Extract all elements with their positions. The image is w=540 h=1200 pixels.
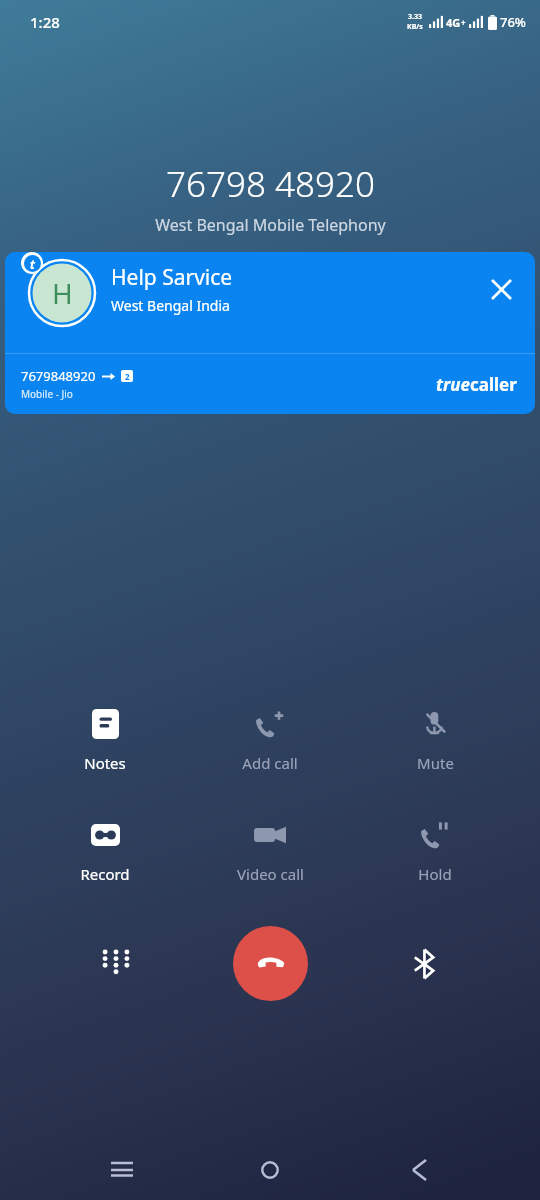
- button[interactable]: End call: [233, 926, 308, 1001]
- staticText: 76%: [500, 13, 526, 31]
- button[interactable]: Add call: [210, 700, 330, 779]
- button[interactable]: Back: [392, 1143, 446, 1197]
- staticText: West Bengal Mobile Telephony: [155, 214, 386, 236]
- staticText: H: [52, 274, 73, 312]
- button[interactable]: Mute: [375, 700, 495, 779]
- button[interactable]: Home: [243, 1143, 297, 1197]
- button[interactable]: Hold: [375, 811, 495, 890]
- staticText: Help Sarvice: [111, 263, 233, 292]
- staticText: Video call: [237, 864, 304, 884]
- staticText: Record: [80, 864, 130, 884]
- button[interactable]: Recents: [95, 1143, 149, 1197]
- button[interactable]: Notes: [45, 700, 165, 779]
- button[interactable]: Bluetooth: [388, 928, 460, 1000]
- staticText: true: [436, 373, 470, 396]
- staticText: Hold: [418, 864, 452, 884]
- staticText: Add call: [242, 753, 298, 773]
- staticText: 3.33: [408, 12, 422, 22]
- staticText: Notes: [84, 753, 126, 773]
- staticText: 7679848920: [21, 367, 96, 385]
- button[interactable]: Dialpad: [80, 928, 152, 1000]
- button[interactable]: Video call: [210, 811, 330, 890]
- staticText: Mute: [417, 753, 454, 773]
- button[interactable]: Close: [481, 269, 521, 309]
- staticText: t: [30, 256, 35, 272]
- staticText: 76798 48920: [166, 160, 375, 208]
- staticText: KB/s: [407, 22, 423, 32]
- staticText: +: [461, 17, 466, 28]
- staticText: 4G: [446, 15, 461, 30]
- staticText: caller: [470, 373, 517, 396]
- button[interactable]: H: [5, 252, 535, 414]
- staticText: 2: [125, 371, 130, 382]
- staticText: West Bengal India: [111, 296, 230, 315]
- staticText: 1:28: [30, 12, 60, 32]
- button[interactable]: Record: [45, 811, 165, 890]
- staticText: Mobile - Jio: [21, 387, 73, 401]
